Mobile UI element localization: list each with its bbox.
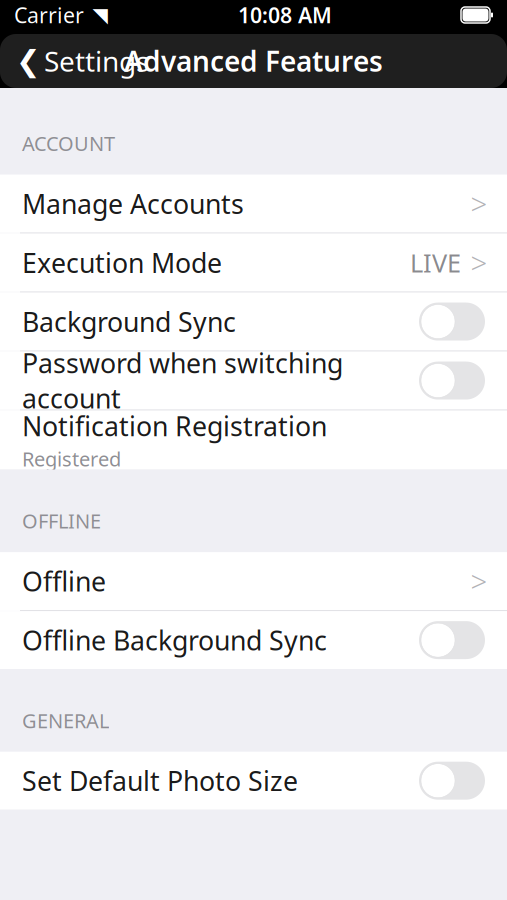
staticText: Set Default Photo Size [22,763,298,798]
staticText: Advanced Features [124,42,383,80]
staticText: Execution Mode [22,245,222,280]
staticText: 10:08 AM [238,1,332,29]
staticText: Password when switching account [22,345,343,416]
button[interactable]: Execution Mode [0,234,507,292]
staticText: Background Sync [22,304,236,339]
staticText: Offline [22,563,106,599]
staticText: GENERAL [22,707,109,734]
staticText: Offline Background Sync [22,622,327,658]
button[interactable]: Set Default Photo Size [0,752,507,810]
button[interactable]: ❮ [0,34,161,88]
staticText: > [470,562,487,601]
staticText: Carrier [14,1,84,29]
button[interactable]: Notification Registration [0,411,507,470]
staticText: ◥ [92,4,107,26]
button[interactable]: Manage Accounts [0,175,507,233]
staticText: Registered [22,445,121,472]
staticText: ❮ [16,44,41,78]
button[interactable]: Offline Background Sync [0,611,507,669]
staticText: LIVE [410,246,461,279]
staticText: > [470,184,487,223]
staticText: Notification Registration [22,408,327,443]
button[interactable]: Background Sync [0,293,507,351]
staticText: ACCOUNT [22,130,115,157]
staticText: Manage Accounts [22,186,244,221]
button[interactable]: Password when switching account [0,352,507,410]
staticText: > [470,243,487,282]
staticText: OFFLINE [22,508,101,534]
staticText: Settings [44,42,149,80]
button[interactable]: Offline [0,552,507,610]
